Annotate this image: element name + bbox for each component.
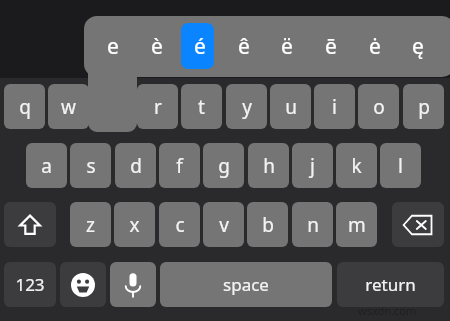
staticText: 123 [15, 273, 45, 296]
button[interactable]: ę [397, 22, 439, 70]
staticText: o [373, 94, 385, 120]
button[interactable]: Shift [4, 202, 56, 247]
button[interactable]: u [270, 84, 311, 129]
staticText: a [41, 153, 52, 179]
button[interactable]: v [203, 202, 244, 247]
staticText: ē [325, 32, 337, 61]
staticText: y [242, 94, 252, 120]
button[interactable]: e [92, 22, 134, 70]
staticText: e [107, 32, 119, 61]
button[interactable]: i [314, 84, 355, 129]
staticText: space [223, 273, 269, 296]
staticText: j [310, 153, 315, 179]
staticText: p [418, 94, 430, 120]
staticText: v [219, 212, 229, 238]
staticText: c [175, 212, 185, 238]
staticText: wsxdn.com [358, 303, 417, 318]
staticText: g [218, 153, 230, 179]
staticText: s [86, 153, 96, 179]
staticText: q [19, 94, 31, 120]
staticText: é [194, 32, 206, 61]
button[interactable]: ė [354, 22, 396, 70]
button[interactable]: è [136, 22, 178, 70]
staticText: t [198, 94, 205, 120]
button[interactable]: space [160, 262, 332, 307]
staticText: i [332, 94, 337, 120]
button[interactable]: ê [223, 22, 265, 70]
staticText: ë [281, 32, 293, 61]
button[interactable]: x [114, 202, 155, 247]
staticText: ė [369, 32, 381, 61]
button[interactable]: l [380, 143, 421, 188]
button[interactable]: ē [310, 22, 352, 70]
button[interactable]: ë [266, 22, 308, 70]
button[interactable]: p [403, 84, 444, 129]
staticText: n [307, 212, 319, 238]
button[interactable]: c [159, 202, 200, 247]
staticText: k [351, 153, 362, 179]
staticText: d [130, 153, 142, 179]
button[interactable]: o [358, 84, 399, 129]
button[interactable]: z [70, 202, 111, 247]
button[interactable]: k [336, 143, 377, 188]
staticText: b [262, 212, 274, 238]
staticText: m [348, 212, 366, 238]
button[interactable]: Backspace [392, 202, 444, 247]
button[interactable]: m [336, 202, 377, 247]
button[interactable]: q [4, 84, 45, 129]
button[interactable]: a [26, 143, 67, 188]
staticText: u [285, 94, 297, 120]
button[interactable]: d [115, 143, 156, 188]
staticText: ê [238, 32, 250, 61]
button[interactable]: f [159, 143, 200, 188]
button[interactable]: Voice input [110, 262, 156, 307]
button[interactable]: é [179, 22, 221, 70]
button[interactable]: h [248, 143, 289, 188]
staticText: f [176, 153, 183, 179]
button[interactable]: n [292, 202, 333, 247]
button[interactable]: g [203, 143, 244, 188]
staticText: r [154, 94, 162, 120]
button[interactable]: b [247, 202, 288, 247]
button[interactable]: j [292, 143, 333, 188]
button[interactable]: y [226, 84, 267, 129]
staticText: è [151, 32, 163, 61]
button[interactable]: t [181, 84, 222, 129]
button[interactable]: r [137, 84, 178, 129]
button[interactable]: s [70, 143, 111, 188]
staticText: l [398, 153, 403, 179]
staticText: h [263, 153, 275, 179]
button[interactable]: Emoji [60, 262, 106, 307]
button[interactable]: return [337, 262, 444, 307]
staticText: z [86, 212, 95, 238]
staticText: x [129, 212, 140, 238]
staticText: ę [412, 32, 424, 61]
staticText: return [365, 273, 416, 296]
button[interactable]: 123 [4, 262, 56, 307]
staticText: w [61, 94, 76, 120]
button[interactable]: w [48, 84, 89, 129]
